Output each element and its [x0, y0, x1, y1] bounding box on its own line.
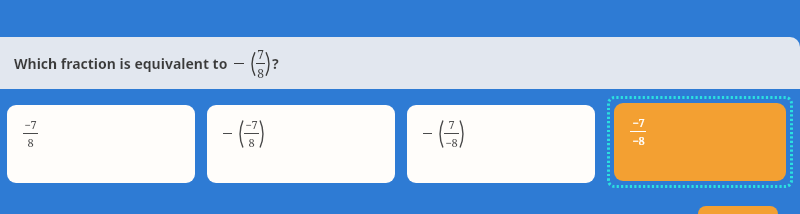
staticText: 8 [248, 135, 255, 150]
staticText: Which fraction is equivalent to [14, 54, 228, 73]
staticText: 7 [257, 46, 264, 62]
staticText: −7 [245, 117, 258, 132]
button[interactable]: Option negative of seven over minus eigh… [407, 105, 595, 183]
staticText: ? [272, 54, 279, 73]
staticText: −8 [632, 133, 645, 148]
staticText: 8 [27, 135, 34, 150]
staticText: 7 [448, 117, 455, 132]
staticText: −7 [24, 117, 37, 132]
staticText: −8 [445, 135, 458, 150]
button[interactable]: Submit answer [698, 206, 778, 214]
button[interactable]: Selected option minus seven over minus e… [607, 96, 793, 188]
button[interactable]: Option minus seven over eight [7, 105, 195, 183]
button[interactable]: Option negative of minus seven over eigh… [207, 105, 395, 183]
staticText: −7 [632, 115, 645, 130]
staticText: 8 [257, 65, 264, 81]
